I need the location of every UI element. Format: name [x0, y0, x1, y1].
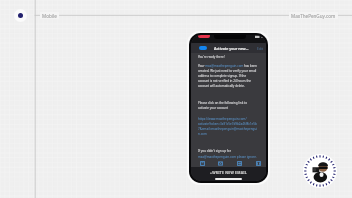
staticText: MaxThePenGuy.com: [291, 13, 336, 19]
staticText: Edit: [257, 46, 264, 51]
button[interactable]: MaxThePenGuy logo: [303, 154, 337, 188]
staticText: Please click on the following link to ac…: [198, 101, 258, 110]
staticText: https://www.maxthepenguin.com/activate?t…: [198, 117, 258, 136]
button[interactable]: Archive: [249, 160, 266, 167]
staticText: Mobile: [42, 13, 57, 19]
staticText: If you didn't sign up for: [198, 149, 231, 153]
staticText: Your max@maxthepenguin.com has been crea…: [198, 64, 258, 88]
button[interactable]: Back: [199, 46, 207, 50]
button[interactable]: Forward: [230, 160, 249, 167]
staticText: max@maxthepenguin.com please ignore.: [198, 155, 257, 159]
staticText: You're ready there!: [198, 55, 225, 59]
button[interactable]: +WRITE NEW EMAIL: [210, 170, 247, 175]
button[interactable]: Reply: [193, 160, 211, 167]
button[interactable]: Reply all: [211, 160, 230, 167]
staticText: Activate your new...: [214, 46, 249, 51]
staticText: +WRITE NEW EMAIL: [210, 170, 247, 175]
